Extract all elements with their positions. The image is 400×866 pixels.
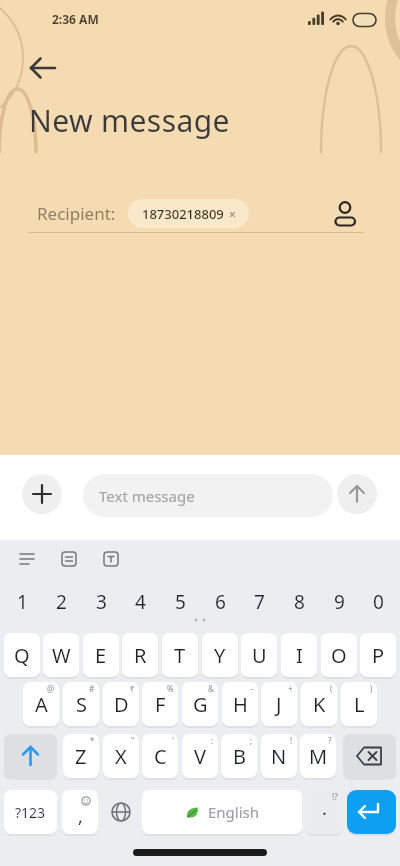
button[interactable]: L	[341, 682, 377, 726]
staticText: P	[372, 642, 385, 669]
button[interactable]: 9	[321, 588, 357, 616]
button[interactable]: 1	[4, 588, 40, 616]
staticText: &	[208, 683, 214, 694]
button[interactable]	[97, 545, 125, 573]
staticText: "	[131, 735, 135, 746]
button[interactable]: 8	[281, 588, 317, 616]
staticText: !?	[332, 791, 338, 802]
staticText: R	[134, 642, 147, 669]
staticText: E	[95, 642, 107, 669]
staticText: 0	[373, 589, 384, 615]
button[interactable]: B	[221, 734, 257, 778]
staticText: F	[155, 691, 166, 718]
button[interactable]: ?123	[4, 790, 57, 834]
button[interactable]: N	[261, 734, 297, 778]
button[interactable]: 3	[83, 588, 119, 616]
staticText: ?	[328, 735, 332, 746]
button[interactable]: 5	[162, 588, 198, 616]
button[interactable]: M	[300, 734, 336, 778]
button[interactable]	[4, 734, 57, 778]
button[interactable]: Z	[63, 734, 99, 778]
staticText: 5	[175, 589, 186, 615]
staticText: %	[167, 683, 174, 694]
button[interactable]: G	[182, 682, 218, 726]
button[interactable]: J	[261, 682, 297, 726]
staticText: 2	[56, 589, 67, 615]
staticText: ,	[78, 804, 83, 829]
button[interactable]: O	[321, 633, 357, 677]
button[interactable]: Text message	[83, 474, 333, 517]
button[interactable]: Q	[4, 633, 40, 677]
staticText: @	[47, 683, 55, 694]
button[interactable]: P	[360, 633, 396, 677]
staticText: Text message	[99, 486, 195, 506]
staticText: '	[172, 735, 174, 746]
staticText: Q	[14, 642, 30, 669]
button[interactable]: V	[182, 734, 218, 778]
staticText: (	[330, 683, 333, 694]
staticText: I	[296, 642, 303, 669]
staticText: A	[35, 691, 48, 718]
button[interactable]: ,	[62, 790, 98, 834]
staticText: C	[154, 743, 167, 770]
button[interactable]: X	[103, 734, 139, 778]
button[interactable]: 18730218809	[128, 199, 249, 228]
button[interactable]: English	[142, 790, 302, 834]
button[interactable]: Y	[202, 633, 238, 677]
staticText: D	[114, 691, 129, 718]
button[interactable]: T	[162, 633, 198, 677]
staticText: Recipient:	[37, 202, 116, 225]
button[interactable]: D	[103, 682, 139, 726]
staticText: H	[233, 691, 248, 718]
staticText: ;	[250, 735, 253, 746]
button[interactable]: F	[142, 682, 178, 726]
button[interactable]: I	[281, 633, 317, 677]
button[interactable]: 4	[122, 588, 158, 616]
staticText: O	[331, 642, 347, 669]
staticText: T	[174, 642, 186, 669]
staticText: B	[233, 743, 246, 770]
staticText: ?123	[15, 803, 46, 822]
button[interactable]: C	[142, 734, 178, 778]
staticText: X	[115, 743, 127, 770]
button[interactable]	[337, 474, 377, 514]
button[interactable]: 2	[43, 588, 79, 616]
staticText: K	[313, 691, 326, 718]
staticText: G	[193, 691, 208, 718]
button[interactable]: H	[222, 682, 258, 726]
button[interactable]: R	[122, 633, 158, 677]
button[interactable]: .	[306, 790, 342, 834]
button[interactable]: W	[43, 633, 79, 677]
staticText: 2:36 AM	[52, 11, 99, 27]
staticText: !	[290, 735, 293, 746]
button[interactable]: E	[83, 633, 119, 677]
staticText: :	[211, 735, 214, 746]
staticText: .	[322, 796, 327, 821]
button[interactable]	[102, 790, 139, 834]
staticText: 1	[17, 589, 28, 615]
button[interactable]: S	[63, 682, 99, 726]
button[interactable]	[330, 196, 364, 230]
button[interactable]	[347, 790, 396, 834]
button[interactable]: U	[241, 633, 277, 677]
button[interactable]: 7	[241, 588, 277, 616]
button[interactable]	[22, 52, 62, 92]
button[interactable]: 6	[202, 588, 238, 616]
button[interactable]: K	[301, 682, 337, 726]
staticText: U	[252, 642, 267, 669]
button[interactable]: 0	[360, 588, 396, 616]
staticText: 8	[294, 589, 305, 615]
staticText: W	[52, 642, 71, 669]
button[interactable]	[22, 474, 62, 514]
staticText: M	[309, 743, 328, 770]
staticText: 3	[96, 589, 107, 615]
button[interactable]	[343, 734, 396, 778]
button[interactable]: A	[23, 682, 59, 726]
button[interactable]	[55, 545, 83, 573]
staticText: 4	[135, 589, 146, 615]
button[interactable]	[13, 545, 41, 573]
staticText: 6	[215, 589, 226, 615]
staticText: +	[288, 683, 293, 694]
staticText: 7	[254, 589, 265, 615]
staticText: New message	[29, 100, 230, 141]
